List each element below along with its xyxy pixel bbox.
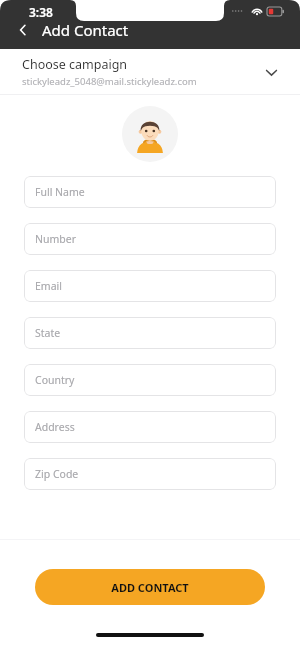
button[interactable]: State [24,317,276,349]
staticText: ADD CONTACT [111,580,189,595]
button[interactable]: Zip Code [24,458,276,490]
button[interactable]: Email [24,270,276,302]
staticText: 3:38 [29,4,53,20]
staticText: Number [35,232,77,246]
staticText: Address [35,420,75,434]
button[interactable]: ADD CONTACT [35,569,265,605]
button[interactable]: Number [24,223,276,255]
staticText: Zip Code [35,467,79,481]
staticText: stickyleadz_5048@mail.stickyleadz.com [22,75,197,88]
staticText: Country [35,373,75,387]
staticText: Full Name [35,185,85,199]
other: Profile photo [122,106,178,162]
button[interactable]: Address [24,411,276,443]
button[interactable]: Back [10,17,36,43]
staticText: State [35,326,61,340]
staticText: Choose campaign [22,56,128,73]
button[interactable]: Full Name [24,176,276,208]
button[interactable]: Choose campaign [0,49,300,94]
staticText: Email [35,279,62,293]
staticText: Add Contact [42,20,129,40]
button[interactable]: Country [24,364,276,396]
